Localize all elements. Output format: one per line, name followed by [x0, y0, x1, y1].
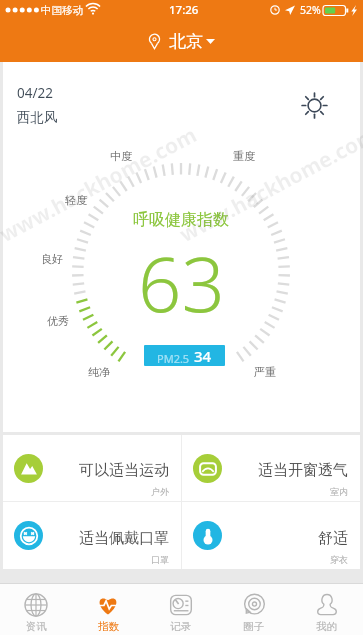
button[interactable]: 资讯: [0, 584, 72, 633]
staticText: 穿衣: [330, 554, 348, 565]
staticText: 北京: [169, 31, 203, 52]
button[interactable]: 适当开窗透气: [182, 435, 360, 501]
button[interactable]: 圈子: [217, 584, 290, 633]
button[interactable]: Weather: [302, 93, 327, 118]
staticText: 室内: [330, 486, 348, 497]
staticText: 63: [138, 231, 225, 335]
button[interactable]: 可以适当运动: [3, 435, 181, 501]
staticText: 04/22: [17, 84, 53, 102]
button[interactable]: 舒适: [182, 502, 360, 569]
button[interactable]: 北京: [137, 26, 227, 57]
staticText: 口罩: [151, 554, 169, 565]
staticText: 我的: [316, 620, 337, 633]
staticText: 适当开窗透气: [258, 461, 348, 480]
staticText: 纯净: [88, 365, 110, 379]
staticText: www.hackhome.com: [174, 120, 363, 249]
staticText: 中国移动: [41, 4, 83, 17]
staticText: 圈子: [243, 620, 264, 633]
button[interactable]: 记录: [144, 584, 217, 633]
button[interactable]: PM2.5: [144, 345, 225, 366]
staticText: 呼吸健康指数: [133, 210, 229, 230]
staticText: 严重: [254, 365, 276, 379]
staticText: 52%: [300, 3, 321, 17]
staticText: 轻度: [65, 193, 87, 207]
staticText: 中度: [110, 149, 132, 163]
staticText: 西北风: [17, 109, 58, 126]
button[interactable]: 指数: [72, 584, 144, 633]
staticText: 记录: [170, 620, 191, 633]
staticText: 资讯: [26, 620, 47, 633]
staticText: 重度: [233, 149, 255, 163]
staticText: 户外: [151, 486, 169, 497]
staticText: 34: [194, 346, 212, 366]
staticText: 可以适当运动: [79, 461, 169, 480]
staticText: 舒适: [318, 529, 348, 548]
staticText: 优秀: [47, 314, 69, 328]
button[interactable]: 我的: [290, 584, 363, 633]
staticText: 指数: [98, 620, 119, 633]
staticText: 17:26: [169, 2, 199, 18]
staticText: PM2.5: [157, 351, 190, 366]
staticText: 适当佩戴口罩: [79, 529, 169, 548]
button[interactable]: 适当佩戴口罩: [3, 502, 181, 569]
staticText: www.hackhome.com: [0, 120, 202, 249]
staticText: 良好: [41, 252, 63, 266]
